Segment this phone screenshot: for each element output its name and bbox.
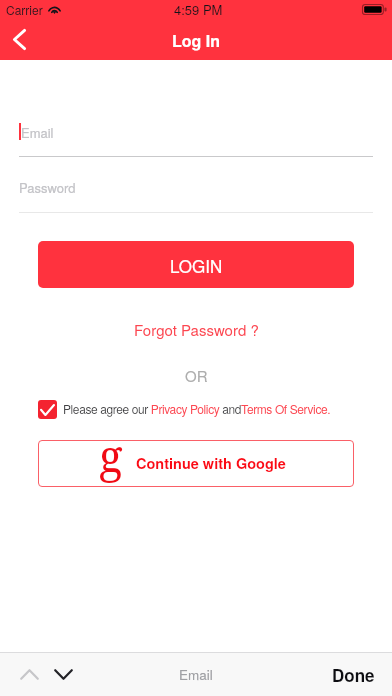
staticText: OR bbox=[185, 365, 208, 386]
button[interactable]: Previous field bbox=[12, 653, 46, 696]
button[interactable]: Back bbox=[0, 18, 38, 60]
button[interactable]: LOGIN bbox=[38, 241, 354, 288]
button[interactable]: Forgot Password ? bbox=[134, 319, 259, 340]
staticText: Continue with Google bbox=[136, 453, 286, 474]
button[interactable]: g bbox=[38, 440, 354, 487]
staticText: LOGIN bbox=[170, 253, 223, 277]
staticText: Password bbox=[19, 178, 76, 197]
staticText: 4:59 PM bbox=[174, 0, 223, 19]
staticText: Carrier bbox=[6, 1, 43, 18]
button[interactable]: Agree to terms bbox=[38, 400, 57, 419]
staticText: Please agree our Privacy Policy andTerms… bbox=[63, 400, 331, 417]
button[interactable]: Next field bbox=[46, 653, 80, 696]
staticText: Email bbox=[179, 665, 213, 684]
button[interactable]: Done bbox=[332, 663, 375, 687]
staticText: Done bbox=[332, 663, 375, 687]
staticText: Log In bbox=[172, 29, 221, 52]
staticText: Email bbox=[21, 123, 54, 142]
staticText: g bbox=[99, 425, 123, 485]
